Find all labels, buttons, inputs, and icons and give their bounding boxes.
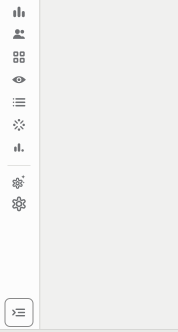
- button[interactable]: Preview: [6, 69, 32, 91]
- button[interactable]: Reports: [6, 136, 32, 158]
- button[interactable]: Apps: [6, 46, 32, 68]
- button[interactable]: People: [6, 23, 32, 45]
- button[interactable]: Activity: [6, 91, 32, 113]
- button[interactable]: Expand sidebar: [5, 298, 33, 326]
- button[interactable]: Usage: [6, 1, 32, 23]
- button[interactable]: AI settings: [6, 170, 32, 192]
- button[interactable]: Settings: [6, 193, 32, 215]
- button[interactable]: Processing: [6, 114, 32, 136]
